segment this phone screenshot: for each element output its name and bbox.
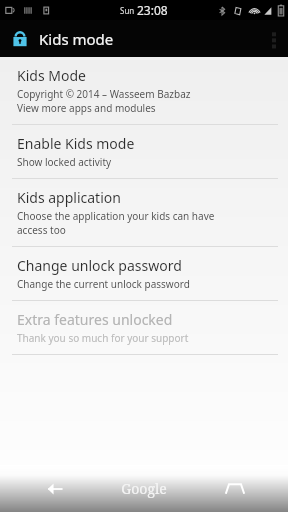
staticText: View more apps and modules: [17, 101, 156, 115]
staticText: Choose the application your kids can hav…: [17, 209, 215, 223]
staticText: Kids mode: [39, 29, 114, 49]
staticText: Change the current unlock password: [17, 277, 190, 291]
staticText: Change unlock password: [17, 256, 182, 275]
staticText: Sun: [120, 5, 135, 16]
staticText: Kids application: [17, 188, 121, 207]
staticText: Thank you so much for your support: [17, 331, 189, 345]
staticText: access too: [17, 223, 66, 237]
button[interactable]: Change unlock password: [0, 247, 288, 300]
staticText: Kids Mode: [17, 66, 86, 85]
staticText: Extra features unlocked: [17, 310, 173, 329]
staticText: Enable Kids mode: [17, 134, 135, 153]
staticText: Google: [121, 479, 167, 498]
button[interactable]: Kids application: [0, 179, 288, 246]
button[interactable]: More options: [260, 20, 288, 57]
button[interactable]: Back: [38, 472, 72, 506]
staticText: Copyright © 2014 – Wasseem Bazbaz: [17, 87, 191, 101]
button[interactable]: Enable Kids mode: [0, 125, 288, 178]
other: Kids mode lock: [10, 29, 30, 49]
button[interactable]: Extra features unlocked: [0, 301, 288, 354]
staticText: 23:08: [137, 2, 168, 18]
staticText: Show locked activity: [17, 155, 112, 169]
button[interactable]: Recent apps: [218, 472, 252, 506]
button[interactable]: Kids Mode: [0, 57, 288, 124]
